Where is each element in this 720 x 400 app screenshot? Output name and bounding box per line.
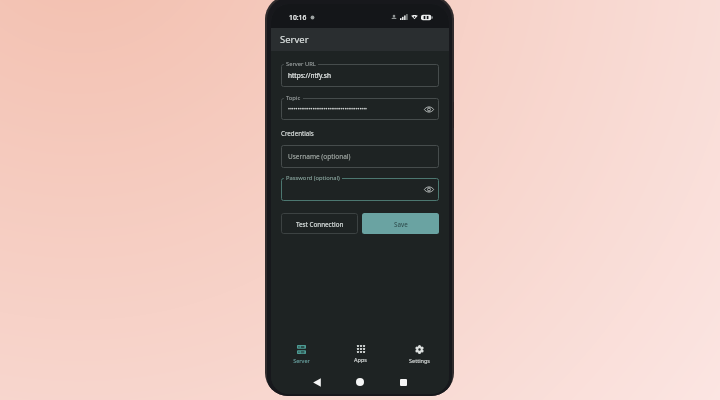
button[interactable] bbox=[281, 178, 439, 201]
button[interactable] bbox=[281, 145, 439, 168]
staticText: Save bbox=[394, 220, 408, 228]
staticText: Topic bbox=[286, 94, 301, 102]
staticText: Server bbox=[293, 357, 310, 364]
staticText: Password (optional) bbox=[286, 174, 340, 182]
button[interactable]: Server bbox=[271, 345, 331, 364]
staticText: Credentials bbox=[281, 129, 314, 137]
staticText: Test Connection bbox=[296, 220, 344, 228]
button[interactable]: Home bbox=[347, 373, 373, 391]
button[interactable]: Settings bbox=[390, 345, 449, 364]
button[interactable]: Toggle visibility bbox=[422, 183, 435, 196]
staticText: Settings bbox=[409, 357, 430, 364]
button[interactable]: Back bbox=[304, 373, 330, 391]
button[interactable]: Toggle visibility bbox=[422, 103, 435, 116]
staticText: Server bbox=[280, 33, 309, 46]
button[interactable]: Recents bbox=[390, 373, 416, 391]
staticText: Server URL bbox=[286, 60, 316, 68]
button[interactable] bbox=[281, 98, 439, 120]
button[interactable]: Apps bbox=[331, 345, 390, 363]
button[interactable]: Test Connection bbox=[281, 213, 358, 234]
staticText: 10:16 bbox=[289, 13, 307, 22]
staticText: https://ntfy.sh bbox=[288, 71, 331, 80]
staticText: Apps bbox=[354, 356, 367, 363]
staticText: Username (optional) bbox=[288, 152, 351, 161]
button[interactable] bbox=[281, 64, 439, 87]
button[interactable]: Save bbox=[362, 213, 439, 234]
staticText: ••••••••••••••••••••••••••••••••••••••••… bbox=[288, 106, 367, 113]
